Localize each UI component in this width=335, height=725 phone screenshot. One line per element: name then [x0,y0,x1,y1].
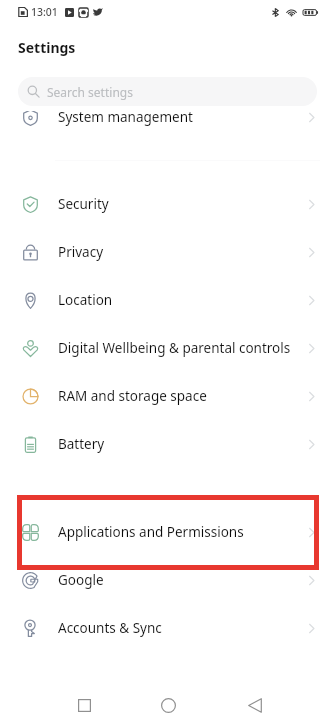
button[interactable]: Digital Wellbeing & parental controls [0,324,335,372]
staticText: RAM and storage space [58,387,207,405]
button[interactable]: Search settings [18,77,317,106]
button[interactable]: Back [234,684,276,725]
button[interactable]: Google [0,556,335,604]
staticText: Location [58,291,113,309]
staticText: Accounts & Sync [58,619,162,637]
button[interactable]: Applications and Permissions [0,508,335,556]
staticText: Battery [58,435,105,453]
staticText: Applications and Permissions [58,523,244,541]
staticText: Privacy [58,243,104,261]
button[interactable]: RAM and storage space [0,372,335,420]
button[interactable]: Home [147,684,189,725]
staticText: System management [58,111,193,126]
staticText: 13:01 [31,5,58,19]
button[interactable]: Security [0,180,335,228]
button[interactable]: Privacy [0,228,335,276]
button[interactable]: Location [0,276,335,324]
staticText: Security [58,195,109,213]
button[interactable]: Battery [0,420,335,468]
staticText: Digital Wellbeing & parental controls [58,339,291,357]
button[interactable]: Recent apps [63,684,105,725]
button[interactable]: System management [0,111,335,141]
staticText: Google [58,571,104,589]
button[interactable]: Accounts & Sync [0,604,335,652]
staticText: Search settings [47,84,133,100]
staticText: Settings [18,38,76,57]
